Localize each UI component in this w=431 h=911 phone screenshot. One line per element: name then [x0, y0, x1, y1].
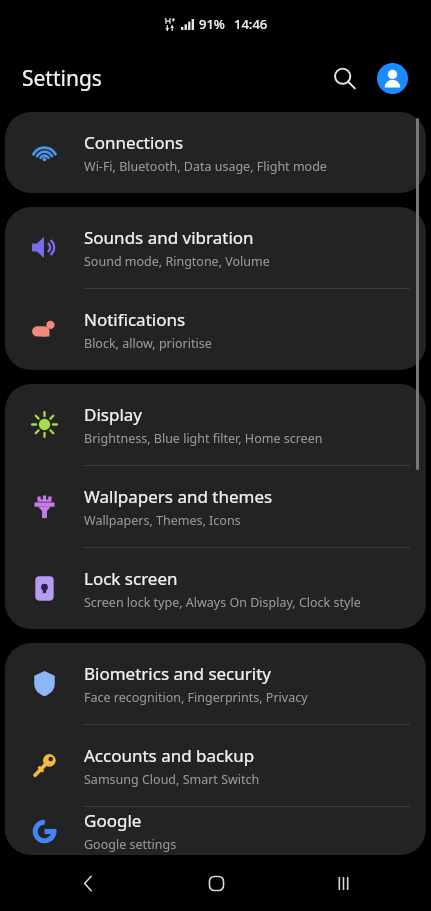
button[interactable]: Account: [369, 55, 415, 101]
staticText: Settings: [22, 64, 102, 93]
staticText: Sound mode, Ringtone, Volume: [84, 253, 270, 270]
staticText: Connections: [84, 131, 184, 154]
button[interactable]: Connections: [5, 112, 426, 193]
staticText: Lock screen: [84, 567, 178, 590]
button[interactable]: Notifications: [5, 289, 426, 370]
staticText: Brightness, Blue light filter, Home scre…: [84, 430, 323, 447]
button[interactable]: Accounts and backup: [5, 725, 426, 806]
staticText: 14:46: [234, 15, 268, 33]
staticText: Wallpapers, Themes, Icons: [84, 512, 241, 529]
button[interactable]: Back: [48, 855, 128, 911]
button[interactable]: Wallpapers and themes: [5, 466, 426, 547]
staticText: Google: [84, 809, 142, 832]
staticText: Google settings: [84, 836, 177, 853]
button[interactable]: Lock screen: [5, 548, 426, 629]
button[interactable]: Biometrics and security: [5, 643, 426, 724]
staticText: Display: [84, 403, 142, 426]
button[interactable]: Google: [5, 807, 426, 855]
button[interactable]: Recent apps: [303, 855, 383, 911]
staticText: Samsung Cloud, Smart Switch: [84, 771, 260, 788]
staticText: Wallpapers and themes: [84, 485, 273, 508]
staticText: Screen lock type, Always On Display, Clo…: [84, 594, 361, 611]
staticText: Face recognition, Fingerprints, Privacy: [84, 689, 308, 706]
button[interactable]: Home: [176, 855, 256, 911]
button[interactable]: Search: [321, 55, 367, 101]
staticText: 91%: [199, 15, 225, 33]
staticText: Wi-Fi, Bluetooth, Data usage, Flight mod…: [84, 158, 327, 175]
staticText: Biometrics and security: [84, 662, 271, 685]
staticText: Accounts and backup: [84, 744, 255, 767]
button[interactable]: Sounds and vibration: [5, 207, 426, 288]
button[interactable]: Display: [5, 384, 426, 465]
staticText: Block, allow, prioritise: [84, 335, 212, 352]
staticText: Notifications: [84, 308, 186, 331]
staticText: Sounds and vibration: [84, 226, 254, 249]
